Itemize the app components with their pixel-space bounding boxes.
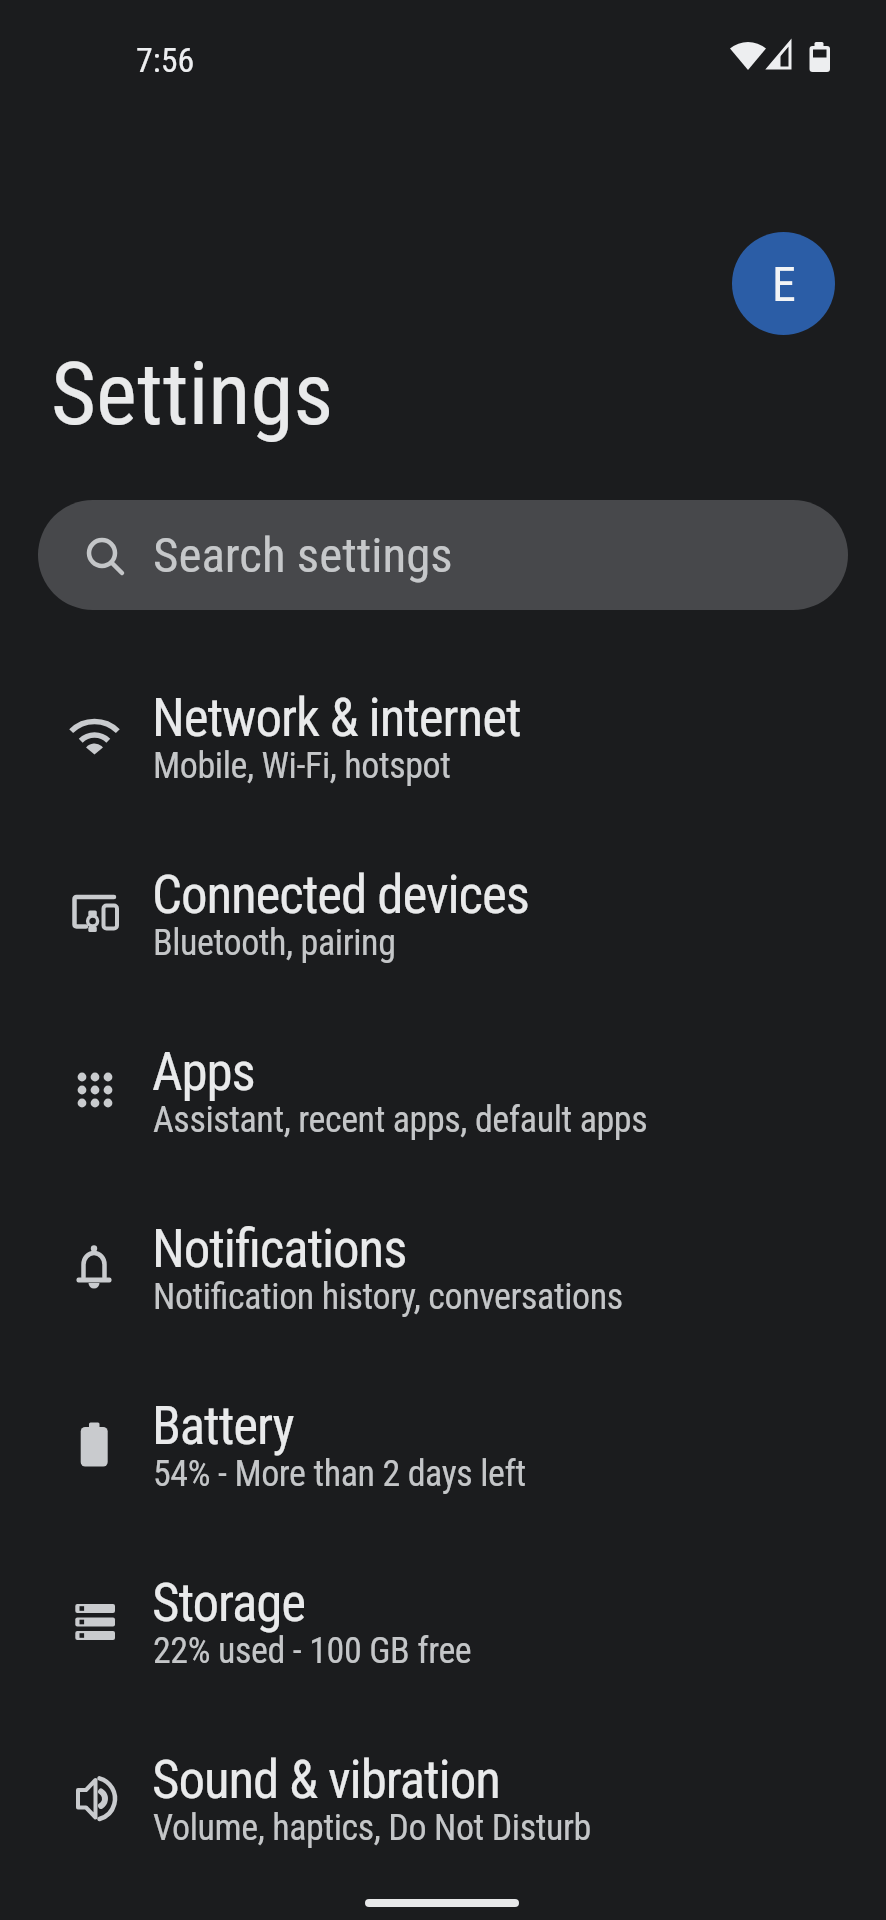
staticText: Network & internet [152, 687, 521, 749]
button[interactable]: Notifications [0, 1182, 886, 1359]
staticText: 7:56 [136, 40, 195, 80]
staticText: Apps [152, 1041, 255, 1103]
staticText: Settings [51, 343, 334, 445]
button[interactable]: Battery [0, 1359, 886, 1536]
button[interactable]: Apps [0, 1005, 886, 1182]
staticText: Notifications [152, 1218, 407, 1280]
staticText: 54% - More than 2 days left [153, 1453, 526, 1495]
staticText: Assistant, recent apps, default apps [153, 1099, 648, 1141]
staticText: Mobile, Wi-Fi, hotspot [153, 745, 451, 787]
button[interactable]: Sound & vibration [0, 1713, 886, 1890]
staticText: E [772, 256, 796, 312]
staticText: Notification history, conversations [153, 1276, 623, 1318]
button[interactable]: Connected devices [0, 828, 886, 1005]
staticText: Search settings [153, 527, 453, 584]
staticText: Sound & vibration [152, 1749, 500, 1811]
staticText: Bluetooth, pairing [153, 922, 396, 964]
button[interactable]: E [732, 232, 835, 335]
staticText: Storage [152, 1572, 306, 1634]
staticText: Volume, haptics, Do Not Disturb [153, 1807, 591, 1849]
staticText: 22% used - 100 GB free [153, 1630, 472, 1672]
button[interactable]: Search settings [38, 500, 848, 610]
staticText: Connected devices [152, 864, 529, 926]
button[interactable]: Storage [0, 1536, 886, 1713]
button[interactable]: Network & internet [0, 651, 886, 828]
staticText: Battery [152, 1395, 294, 1457]
